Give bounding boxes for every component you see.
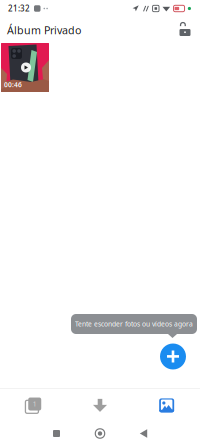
button[interactable]: Recent apps <box>35 420 78 445</box>
button[interactable]: Albums <box>0 389 67 422</box>
button[interactable]: Photos <box>133 389 200 422</box>
staticText: 1 <box>33 399 37 408</box>
button[interactable]: Unlock private album <box>173 18 197 42</box>
button[interactable]: Back <box>122 420 165 445</box>
staticText: 21:32 <box>8 3 30 14</box>
button[interactable]: Video, 00:46 <box>1 43 49 92</box>
button[interactable]: Home <box>78 420 122 445</box>
staticText: Álbum Privado <box>7 23 81 37</box>
button[interactable]: Downloads <box>67 389 133 422</box>
staticText: Tente esconder fotos ou vídeos agora <box>75 320 193 328</box>
button[interactable]: Add photos or videos <box>158 343 188 370</box>
staticText: 00:46 <box>4 80 22 89</box>
